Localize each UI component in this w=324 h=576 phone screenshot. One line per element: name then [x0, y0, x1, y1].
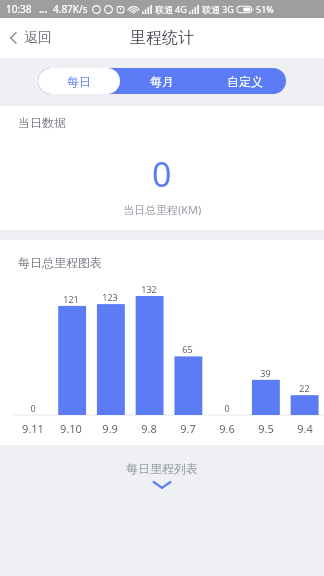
staticText: 9.4	[297, 421, 313, 436]
staticText: 0	[152, 151, 172, 197]
button[interactable]: 返回	[0, 23, 62, 53]
staticText: 4G	[175, 3, 187, 15]
staticText: 9.5	[258, 421, 274, 436]
staticText: 自定义	[227, 74, 263, 89]
staticText: 9.9	[102, 421, 118, 436]
staticText: 51%	[256, 3, 274, 15]
staticText: ...	[39, 2, 48, 16]
staticText: 里程统计	[130, 28, 194, 48]
staticText: 每日总里程图表	[18, 255, 102, 270]
staticText: 联通	[202, 4, 220, 15]
staticText: 39	[260, 367, 271, 379]
staticText: 9.6	[219, 421, 235, 436]
button[interactable]: 每日里程列表 展开	[0, 455, 324, 501]
staticText: 每日	[67, 74, 91, 89]
button[interactable]: 自定义	[203, 68, 286, 94]
staticText: 123	[102, 291, 118, 303]
staticText: 0	[224, 402, 230, 414]
staticText: 65	[182, 343, 193, 355]
staticText: 当日数据	[18, 115, 66, 130]
staticText: 132	[141, 283, 157, 295]
staticText: 10:38	[6, 2, 32, 16]
staticText: 联通	[155, 4, 173, 15]
staticText: 9.11	[22, 421, 44, 436]
button[interactable]: 每日	[38, 68, 120, 94]
staticText: 0	[30, 402, 36, 414]
staticText: 当日总里程(KM)	[123, 202, 202, 217]
staticText: 4.87K/s	[53, 2, 88, 16]
staticText: 3G	[222, 3, 234, 15]
staticText: 返回	[24, 29, 52, 47]
staticText: 9.10	[60, 421, 82, 436]
staticText: 9.7	[180, 421, 196, 436]
staticText: 9.8	[141, 421, 157, 436]
staticText: 22	[299, 382, 310, 394]
staticText: 每日里程列表	[126, 461, 198, 476]
staticText: 121	[63, 293, 79, 305]
staticText: 每月	[150, 74, 174, 89]
button[interactable]: 每月	[120, 68, 203, 94]
